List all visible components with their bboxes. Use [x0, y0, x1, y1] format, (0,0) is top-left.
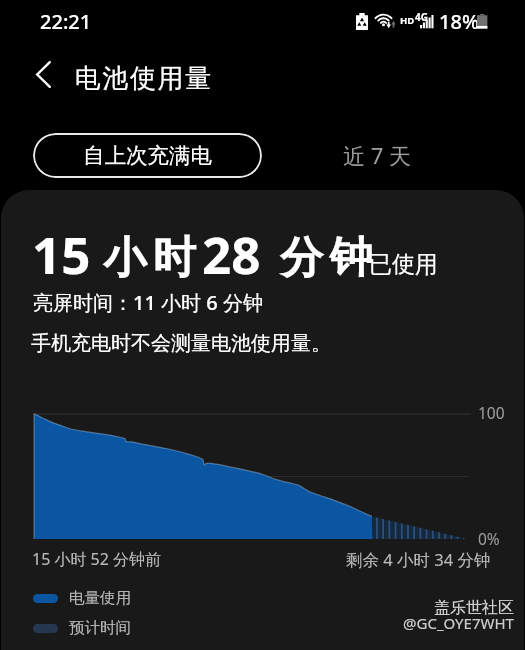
staticText: 小时: [100, 231, 199, 285]
staticText: HD: [400, 14, 415, 27]
staticText: 0%: [478, 528, 500, 549]
staticText: 预计时间: [69, 618, 131, 638]
staticText: 手机充电时不会测量电池使用量。: [31, 331, 331, 356]
staticText: 剩余 4 小时 34 分钟: [346, 548, 491, 571]
staticText: 分钟: [277, 231, 376, 285]
staticText: 28: [202, 219, 261, 288]
staticText: 近 7 天: [343, 140, 412, 170]
staticText: 100: [478, 402, 505, 423]
staticText: 15: [32, 219, 91, 288]
staticText: @GC_OYE7WHT: [403, 613, 514, 633]
button[interactable]: 自上次充满电: [33, 133, 262, 178]
staticText: 电池使用量: [74, 62, 212, 95]
staticText: 4G: [415, 10, 428, 24]
button[interactable]: Back: [21, 52, 66, 97]
staticText: 亮屏时间：11 小时 6 分钟: [33, 289, 263, 316]
staticText: 盖乐世社区: [434, 598, 514, 618]
staticText: 18%: [439, 8, 479, 35]
staticText: 电量使用: [69, 588, 131, 608]
button[interactable]: 近 7 天: [325, 136, 430, 174]
staticText: 已使用: [369, 250, 438, 279]
staticText: 22:21: [40, 8, 92, 35]
staticText: 15 小时 52 分钟前: [32, 548, 162, 570]
staticText: 自上次充满电: [83, 142, 212, 169]
